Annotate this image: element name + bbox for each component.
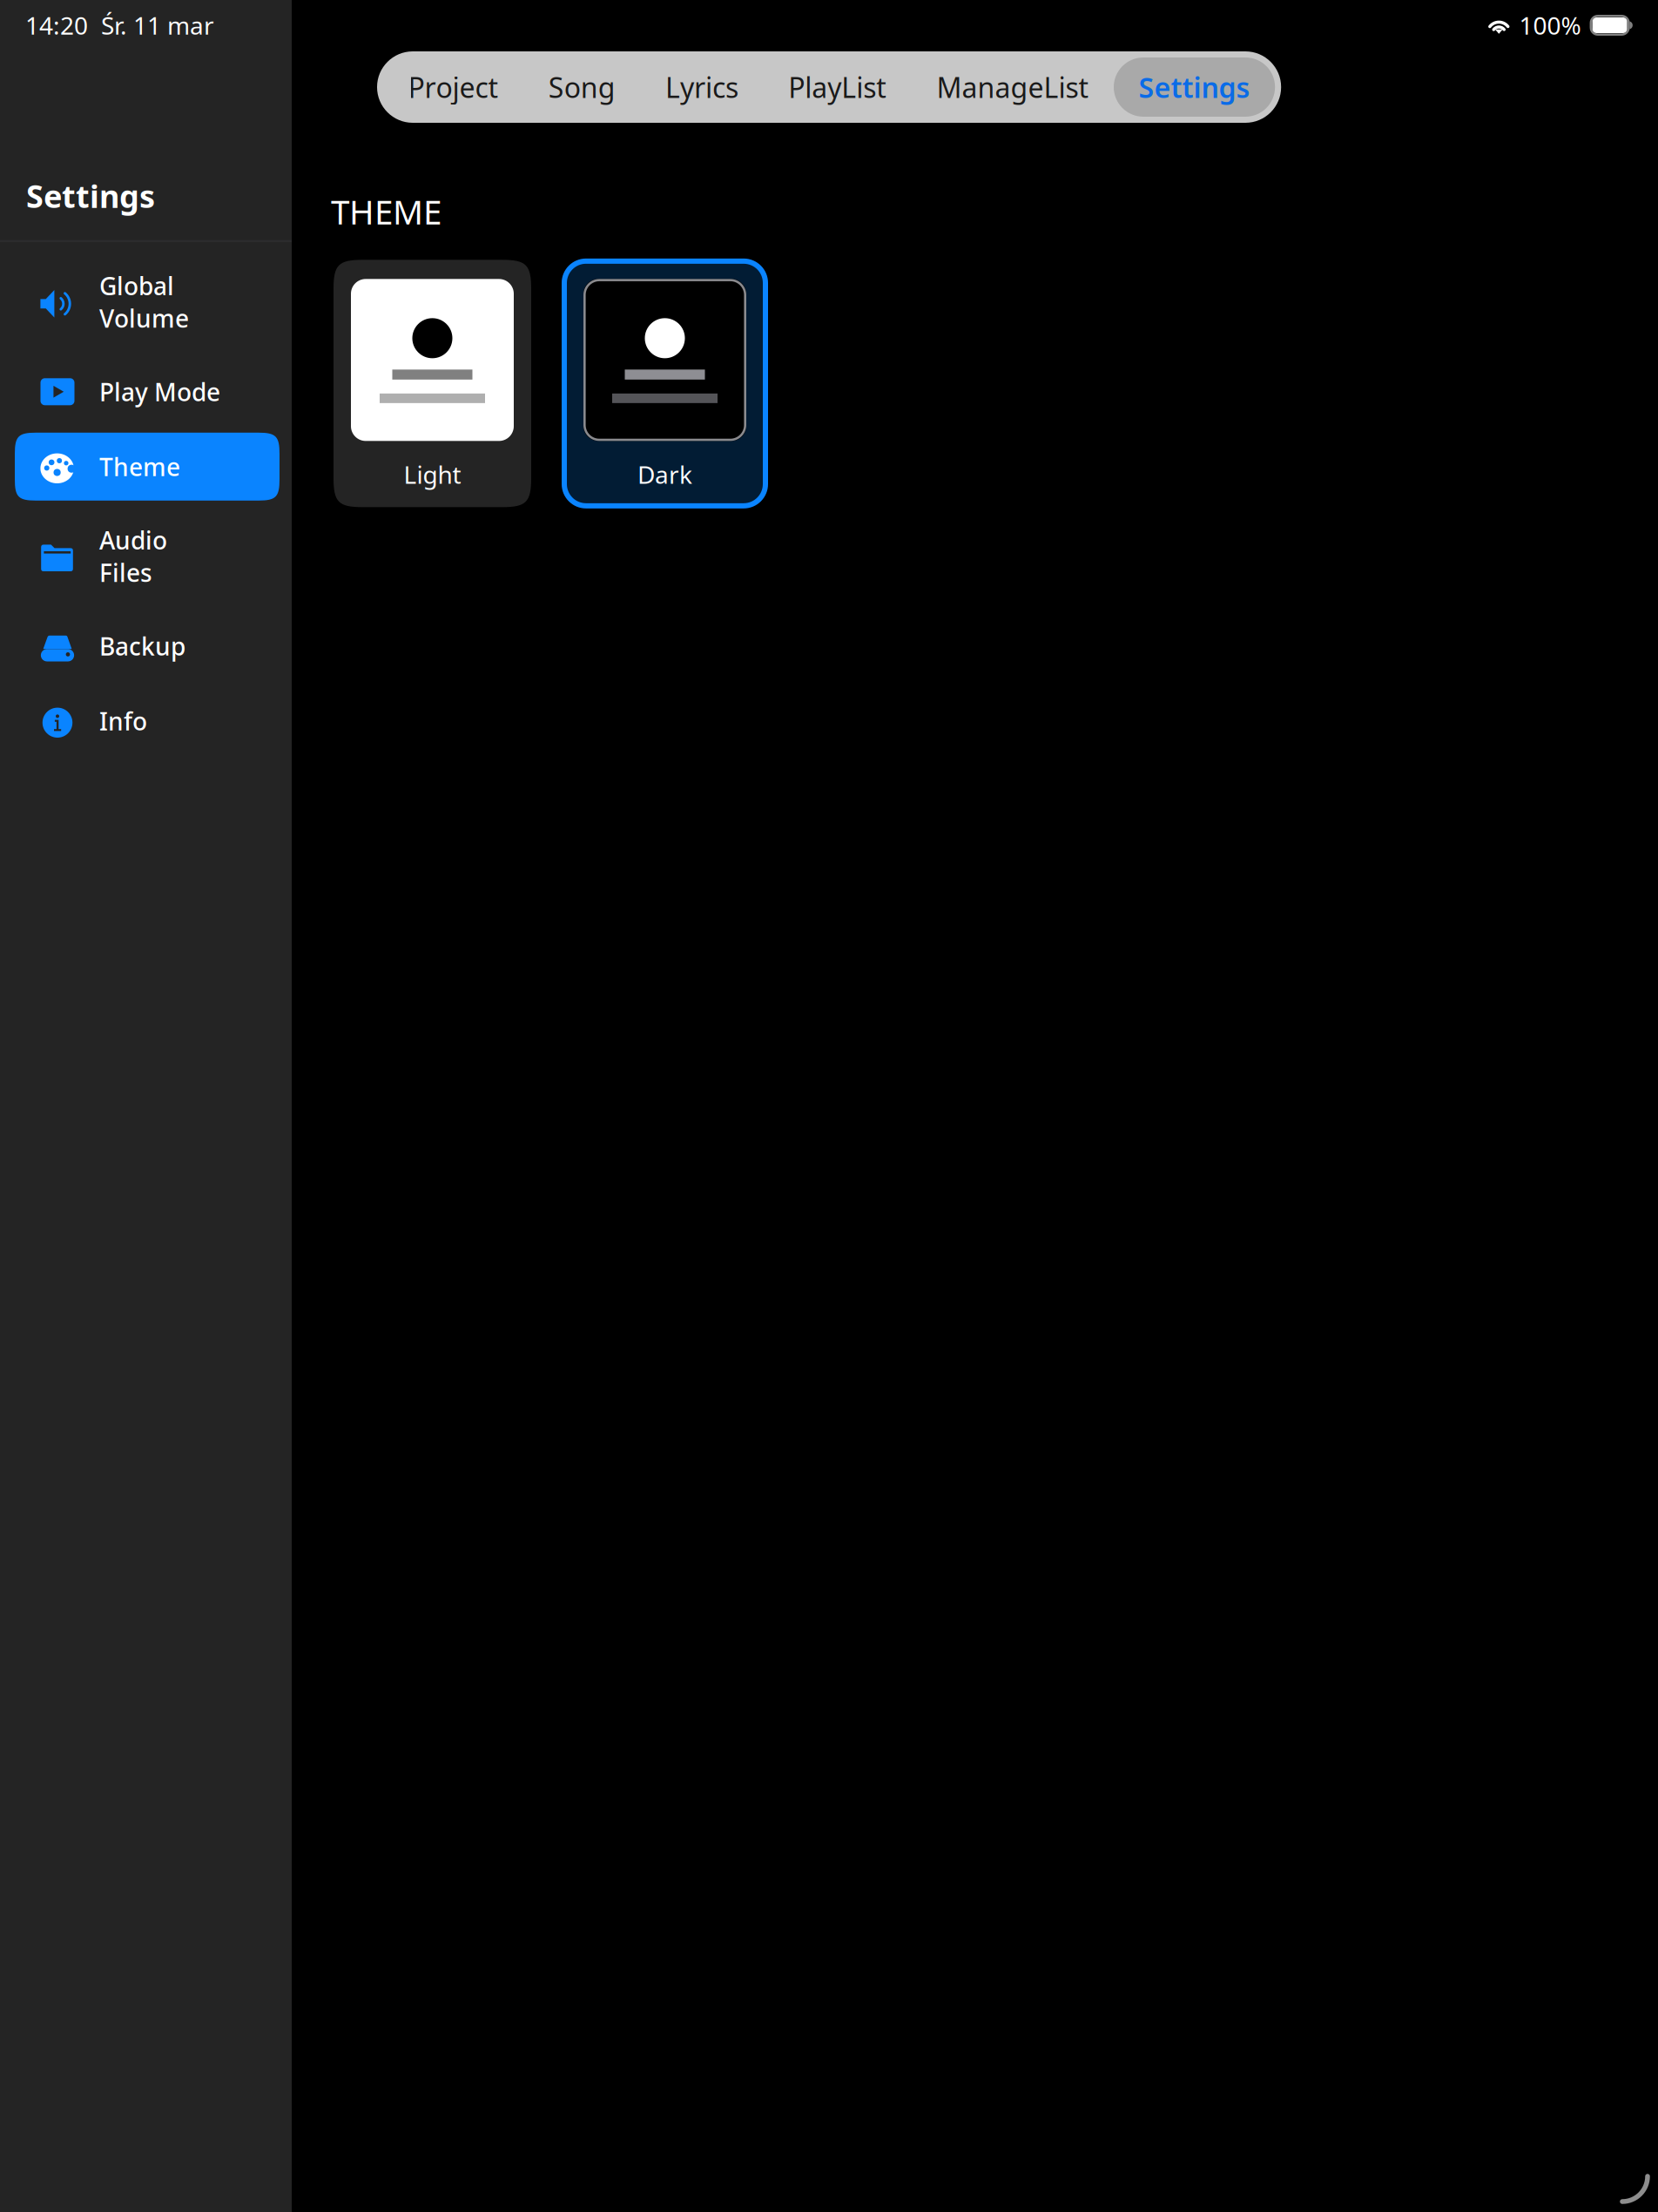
button[interactable]: Song bbox=[524, 57, 640, 117]
staticText: Dark bbox=[637, 458, 692, 491]
staticText: Project bbox=[408, 69, 499, 106]
staticText: PlayList bbox=[788, 69, 887, 106]
staticText: Settings bbox=[26, 175, 155, 217]
button[interactable]: Global Volume bbox=[15, 253, 292, 351]
staticText: ManageList bbox=[936, 69, 1089, 106]
staticText: 100% bbox=[1519, 9, 1581, 41]
button[interactable]: Theme bbox=[15, 433, 292, 501]
staticText: Lyrics bbox=[665, 69, 738, 106]
staticText: Global Volume bbox=[99, 270, 189, 334]
staticText: Theme bbox=[99, 450, 180, 483]
button[interactable]: Info bbox=[15, 687, 292, 755]
button[interactable]: Play Mode bbox=[15, 358, 292, 426]
button[interactable]: Lyrics bbox=[640, 57, 763, 117]
staticText: Settings bbox=[1139, 69, 1250, 106]
staticText: Audio Files bbox=[99, 524, 167, 589]
staticText: Song bbox=[548, 69, 615, 106]
staticText: THEME bbox=[331, 189, 441, 234]
button[interactable]: Dark bbox=[566, 260, 764, 507]
staticText: Play Mode bbox=[99, 376, 220, 408]
button[interactable]: Backup bbox=[15, 612, 292, 680]
staticText: 14:20 bbox=[25, 9, 88, 41]
staticText: Light bbox=[404, 458, 461, 491]
button[interactable]: Light bbox=[334, 260, 531, 507]
button[interactable]: Audio Files bbox=[15, 508, 292, 605]
button[interactable]: Project bbox=[383, 57, 524, 117]
staticText: Info bbox=[99, 705, 147, 737]
button[interactable]: PlayList bbox=[763, 57, 912, 117]
staticText: Backup bbox=[99, 630, 185, 662]
button[interactable]: ManageList bbox=[912, 57, 1114, 117]
button[interactable]: Settings bbox=[1114, 57, 1275, 117]
staticText: Śr. 11 mar bbox=[101, 9, 214, 41]
